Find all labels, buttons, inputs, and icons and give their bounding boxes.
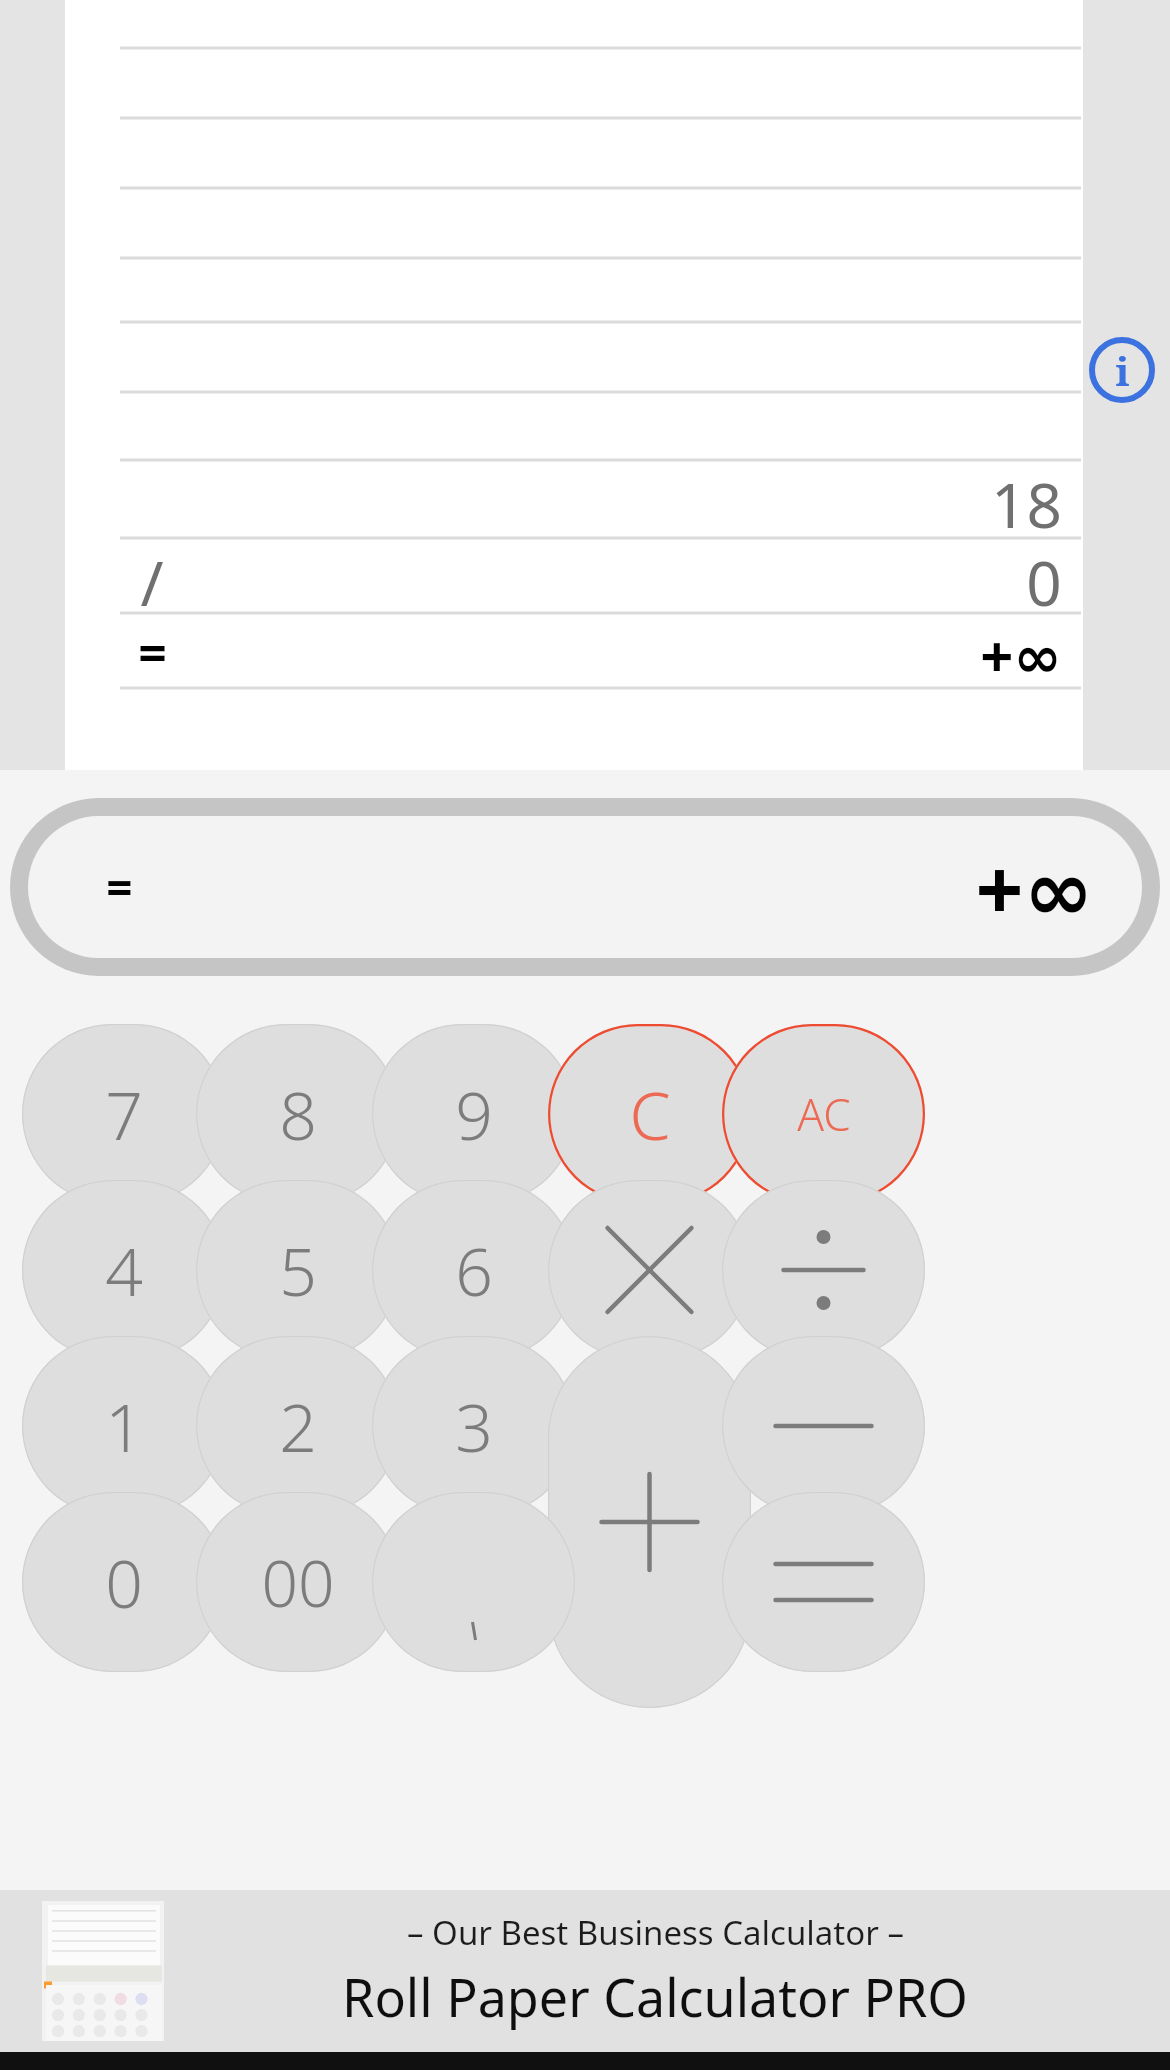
staticText: 9 [455,1069,493,1159]
staticText: / [140,540,164,613]
button[interactable]: Minus [722,1336,925,1516]
staticText: 0 [1026,540,1062,613]
staticText: 5 [279,1225,317,1315]
button[interactable]: AC [722,1024,925,1204]
button[interactable]: 6 [372,1180,575,1360]
staticText: – Our Best Business Calculator – [407,1910,904,1955]
button[interactable]: C [548,1024,751,1204]
button[interactable]: 3 [372,1336,575,1516]
button[interactable]: – Our Best Business Calculator – [0,1890,1170,2052]
staticText: 7 [105,1069,143,1159]
button[interactable]: 9 [372,1024,575,1204]
staticText: i [1115,343,1130,397]
staticText: +∞ [980,615,1062,688]
staticText: 2 [279,1381,317,1471]
staticText: 8 [279,1069,317,1159]
button[interactable]: 1 [22,1336,225,1516]
staticText: Roll Paper Calculator PRO [342,1961,968,2032]
staticText: C [629,1069,671,1159]
button[interactable]: 00 [196,1492,399,1672]
staticText: AC [797,1084,851,1144]
staticText: 00 [261,1539,335,1626]
button[interactable]: 2 [196,1336,399,1516]
staticText: 6 [455,1225,493,1315]
button[interactable]: 8 [196,1024,399,1204]
staticText: +∞ [975,830,1094,944]
button[interactable]: 7 [22,1024,225,1204]
button[interactable]: 0 [22,1492,225,1672]
staticText: = [138,618,167,686]
button[interactable]: 5 [196,1180,399,1360]
staticText: = [106,856,133,919]
staticText: 4 [105,1225,143,1315]
button[interactable]: Divide [722,1180,925,1360]
staticText: 1 [105,1381,143,1471]
button[interactable]: Decimal point [372,1492,575,1672]
staticText: 18 [991,462,1062,538]
staticText: 3 [455,1381,493,1471]
button[interactable]: Info [1086,334,1158,406]
button[interactable]: = [28,816,1142,958]
staticText: 0 [105,1537,143,1627]
button[interactable]: Plus [548,1336,751,1708]
button[interactable]: 4 [22,1180,225,1360]
button[interactable]: Equals [722,1492,925,1672]
button[interactable]: Multiply [548,1180,751,1360]
